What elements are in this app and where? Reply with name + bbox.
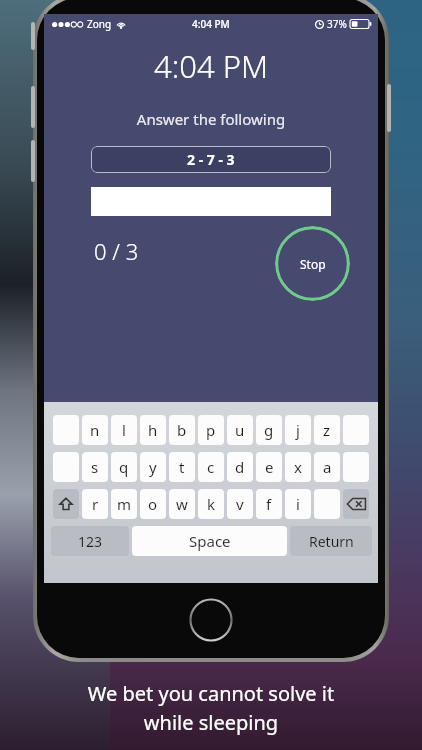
button[interactable]: Space [132, 526, 287, 556]
button[interactable]: a [314, 452, 340, 482]
staticText: Stop [300, 256, 326, 272]
button[interactable]: f [256, 489, 282, 519]
staticText: b [177, 420, 187, 440]
button[interactable]: Return [290, 526, 372, 556]
staticText: z [323, 420, 331, 440]
staticText: k [207, 494, 216, 514]
button[interactable]: g [256, 415, 282, 445]
button[interactable]: w [169, 489, 195, 519]
button[interactable]: h [140, 415, 166, 445]
staticText: r [92, 494, 99, 514]
button[interactable]: q [111, 452, 137, 482]
staticText: n [90, 420, 100, 440]
button[interactable]: j [285, 415, 311, 445]
button[interactable]: r [82, 489, 108, 519]
staticText: Space [189, 531, 231, 551]
staticText: Return [309, 532, 354, 551]
button[interactable] [53, 452, 79, 482]
button[interactable]: e [256, 452, 282, 482]
staticText: f [266, 494, 272, 514]
staticText: a [323, 457, 332, 477]
staticText: 0 / 3 [94, 236, 139, 266]
button[interactable]: Backspace [343, 489, 369, 519]
staticText: 4:04 PM [192, 17, 230, 31]
staticText: o [148, 494, 158, 514]
staticText: We bet you cannot solve it [0, 680, 422, 707]
staticText: Answer the following [44, 109, 378, 129]
staticText: s [91, 457, 99, 477]
button[interactable]: k [198, 489, 224, 519]
button[interactable]: i [285, 489, 311, 519]
button[interactable]: n [82, 415, 108, 445]
button[interactable]: x [285, 452, 311, 482]
staticText: u [235, 420, 245, 440]
button[interactable]: 123 [51, 526, 129, 556]
staticText: j [296, 420, 300, 440]
staticText: c [207, 457, 215, 477]
staticText: x [294, 457, 302, 477]
button[interactable]: l [111, 415, 137, 445]
staticText: i [296, 494, 300, 514]
button[interactable] [343, 415, 369, 445]
staticText: 2 - 7 - 3 [187, 150, 235, 169]
staticText: y [149, 457, 157, 477]
staticText: m [117, 494, 132, 514]
staticText: 123 [78, 532, 103, 551]
button[interactable]: Stop [275, 226, 350, 301]
staticText: q [119, 457, 129, 477]
button[interactable]: y [140, 452, 166, 482]
button[interactable]: Shift [53, 489, 79, 519]
button[interactable] [314, 489, 340, 519]
button[interactable]: u [227, 415, 253, 445]
button[interactable] [343, 452, 369, 482]
button[interactable] [53, 415, 79, 445]
staticText: Zong [87, 17, 112, 31]
staticText: h [148, 420, 158, 440]
staticText: l [122, 420, 126, 440]
staticText: e [265, 457, 274, 477]
button[interactable]: p [198, 415, 224, 445]
button[interactable]: c [198, 452, 224, 482]
button[interactable]: o [140, 489, 166, 519]
staticText: g [264, 420, 274, 440]
button[interactable]: t [169, 452, 195, 482]
staticText: 4:04 PM [44, 45, 378, 87]
staticText: while sleeping [0, 709, 422, 736]
button[interactable]: v [227, 489, 253, 519]
staticText: p [206, 420, 216, 440]
staticText: w [176, 494, 188, 514]
button[interactable]: b [169, 415, 195, 445]
staticText: d [235, 457, 245, 477]
button[interactable]: z [314, 415, 340, 445]
button[interactable]: d [227, 452, 253, 482]
button[interactable]: m [111, 489, 137, 519]
staticText: t [179, 457, 185, 477]
button[interactable]: s [82, 452, 108, 482]
button[interactable]: 2 - 7 - 3 [91, 146, 331, 173]
staticText: v [236, 494, 244, 514]
staticText: 37% [327, 17, 347, 31]
button[interactable]: Home [189, 598, 233, 642]
